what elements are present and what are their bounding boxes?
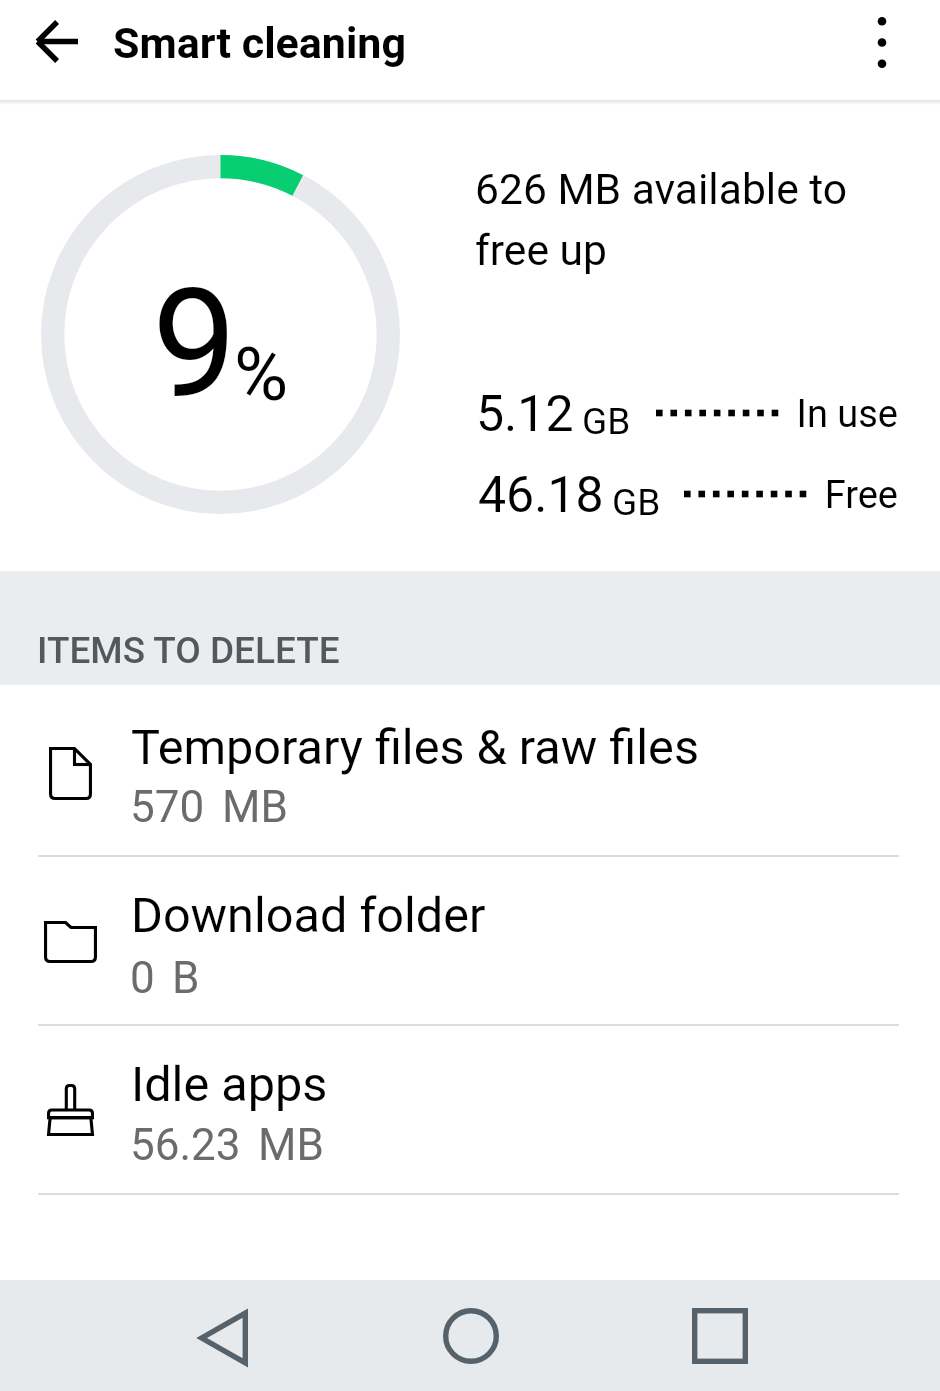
button[interactable]: Recent apps (660, 1286, 780, 1386)
staticText: Smart cleaning (113, 18, 406, 68)
button[interactable]: Navigate up (14, 0, 98, 91)
staticText: ITEMS TO DELETE (37, 629, 340, 672)
staticText: MB (258, 1119, 324, 1171)
staticText: 570 (130, 781, 205, 833)
staticText: % (234, 331, 289, 418)
staticText: Temporary files & raw files (131, 719, 699, 776)
button[interactable]: Home (411, 1286, 531, 1386)
staticText: 0 (130, 952, 155, 1004)
staticText: 626 MB available to free up (475, 164, 848, 275)
button[interactable]: Back (163, 1288, 283, 1388)
staticText: GB (612, 481, 661, 524)
staticText: MB (222, 781, 288, 833)
staticText: 5.12 (476, 385, 574, 444)
staticText: 46.18 (478, 466, 604, 525)
button[interactable]: Download folder (0, 857, 940, 1026)
staticText: Idle apps (131, 1056, 328, 1113)
staticText: Download folder (131, 887, 486, 944)
staticText: In use (0, 392, 898, 437)
staticText: B (172, 952, 200, 1004)
button[interactable]: Idle apps (0, 1026, 940, 1195)
button[interactable]: More options (836, 0, 928, 92)
button[interactable]: Temporary files & raw files (0, 685, 940, 857)
staticText: 56.23 (130, 1119, 241, 1171)
staticText: GB (582, 400, 631, 443)
staticText: 9 (152, 256, 237, 433)
staticText: Free (0, 473, 898, 518)
